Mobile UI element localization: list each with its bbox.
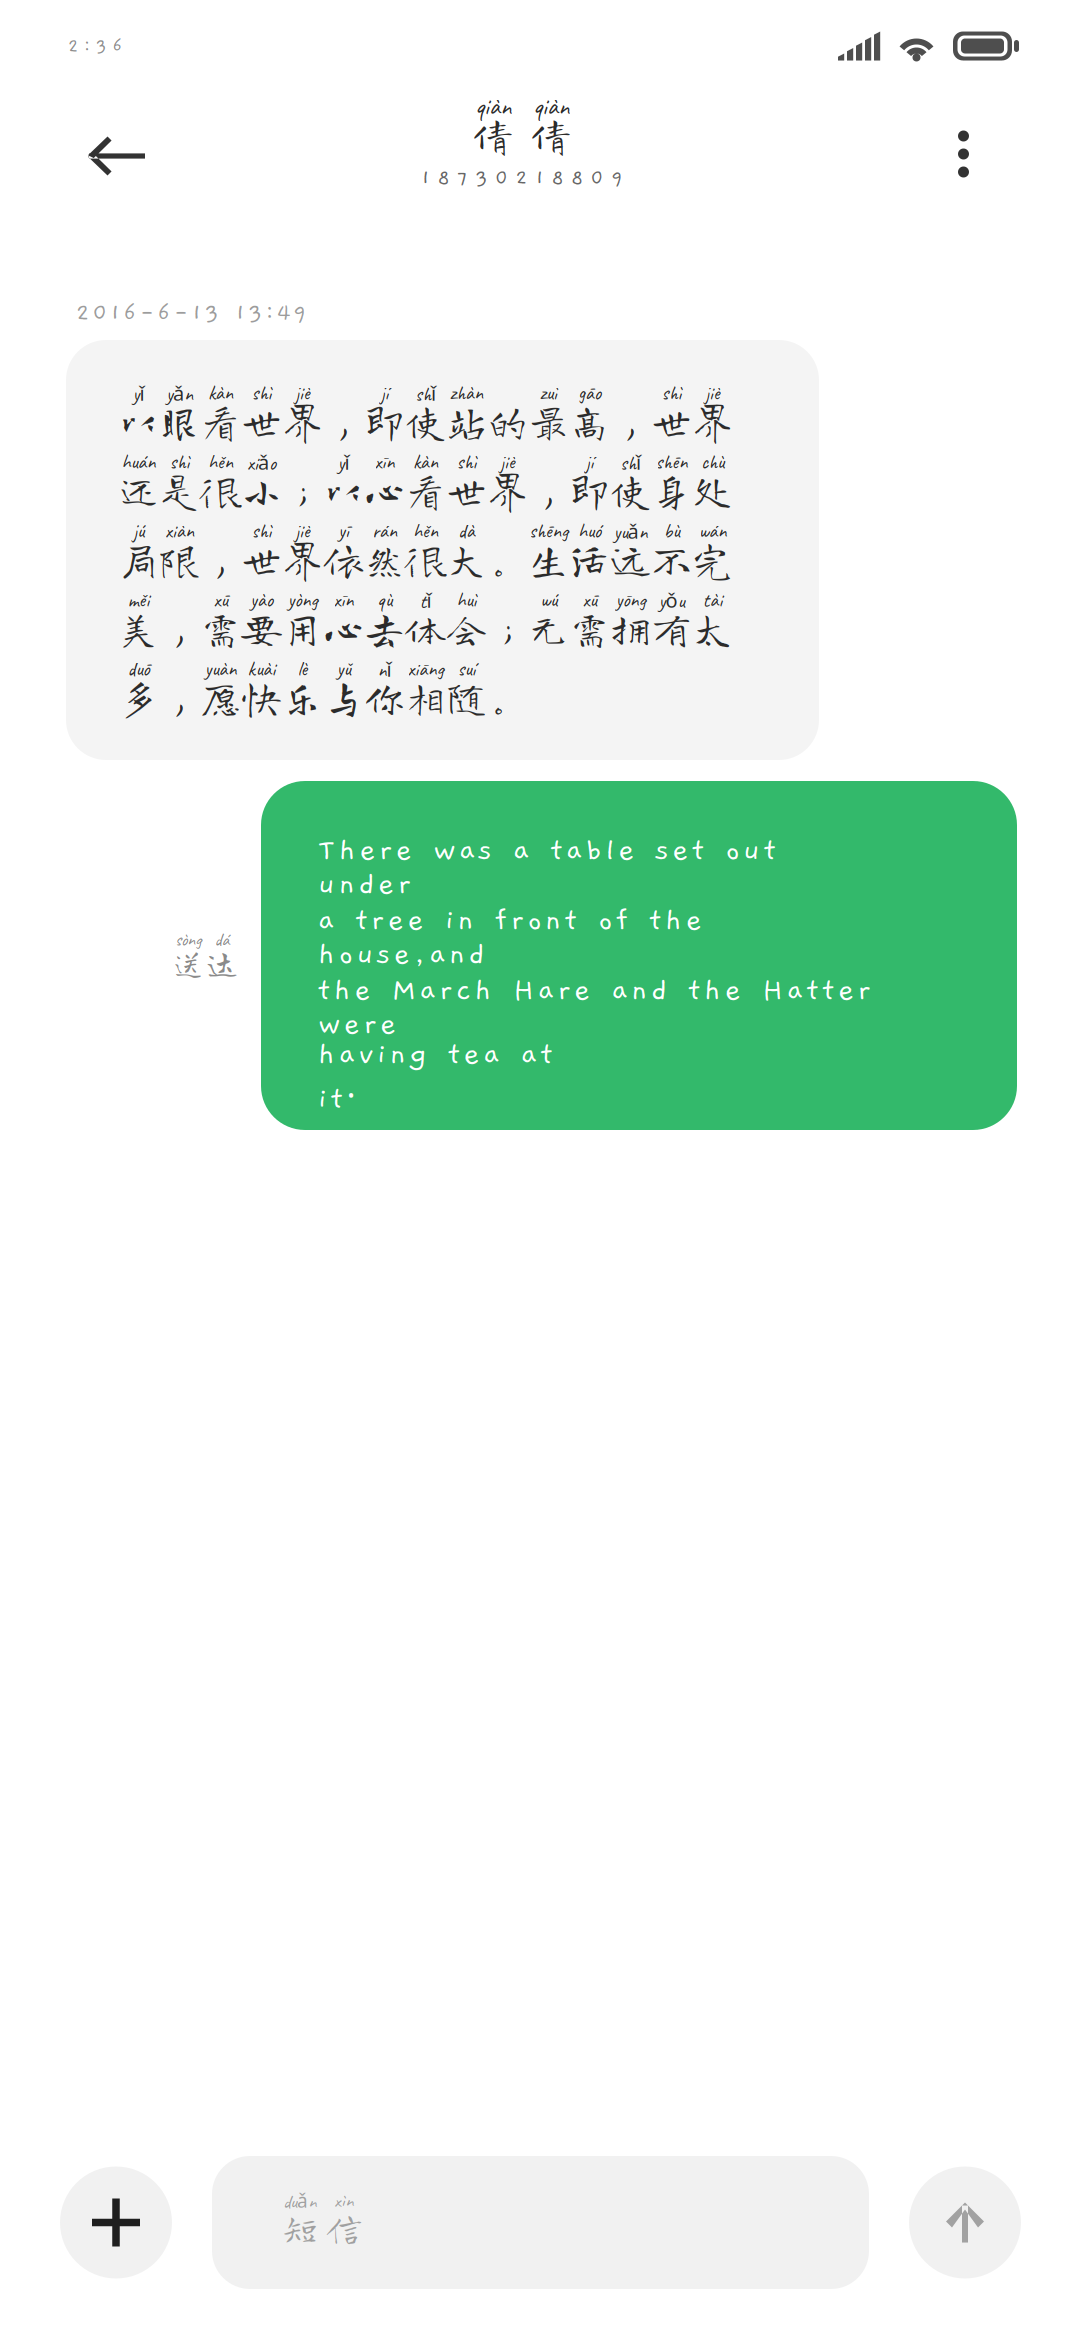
staticText: 局	[118, 538, 159, 579]
staticText: 。	[487, 538, 528, 579]
staticText: shì	[661, 380, 681, 406]
staticText: 2:36	[68, 36, 122, 56]
staticText: ，	[159, 676, 200, 717]
staticText: 世	[651, 400, 692, 441]
staticText: měi	[127, 587, 149, 613]
staticText: 即	[364, 400, 405, 441]
staticText: ，	[610, 400, 651, 441]
staticText: 界	[282, 538, 323, 579]
staticText: 18730218809	[421, 167, 623, 190]
staticText: 信	[326, 2209, 362, 2245]
staticText: 世	[241, 400, 282, 441]
staticText: yǒu	[658, 586, 684, 614]
staticText: 世	[241, 538, 282, 579]
staticText: yào	[250, 587, 273, 613]
staticText: ；	[487, 607, 528, 648]
staticText: 需	[200, 607, 241, 648]
staticText: 体	[405, 607, 446, 648]
staticText: 相	[405, 676, 446, 717]
staticText: yǔ	[336, 656, 350, 682]
button[interactable]: Add attachment	[60, 2156, 172, 2289]
staticText: 界	[692, 400, 733, 441]
staticText: a tree in front of the house,and	[318, 903, 890, 937]
staticText: 太	[692, 607, 733, 648]
button[interactable]: duǎn	[212, 2156, 869, 2289]
staticText: 看	[200, 400, 241, 441]
staticText: wú	[540, 587, 557, 613]
staticText: jí	[585, 449, 593, 475]
staticText: 生	[528, 538, 569, 579]
staticText: lè	[297, 656, 307, 682]
staticText: hěn	[413, 518, 438, 544]
staticText: ，	[323, 400, 364, 441]
staticText: 拥	[610, 607, 651, 648]
staticText: 界	[487, 469, 528, 510]
staticText: 快	[241, 676, 282, 717]
staticText: tǐ	[419, 586, 431, 614]
staticText: 倩	[472, 114, 513, 155]
staticText: qiàn	[533, 91, 569, 122]
staticText: xiǎo	[247, 448, 276, 476]
staticText: qù	[377, 587, 392, 613]
staticText: 处	[692, 469, 733, 510]
staticText: wán	[698, 518, 726, 544]
staticText: yǐ	[132, 379, 144, 407]
staticText: shì	[456, 449, 476, 475]
staticText: 心	[323, 607, 364, 648]
button[interactable]: Back	[88, 92, 145, 202]
staticText: duō	[127, 656, 149, 682]
staticText: tài	[702, 587, 722, 613]
staticText: 很	[405, 538, 446, 579]
staticText: 是	[159, 469, 200, 510]
staticText: nǐ	[377, 655, 391, 683]
staticText: 远	[610, 538, 651, 579]
button[interactable]: Send	[909, 2156, 1021, 2289]
staticText: xū	[582, 587, 596, 613]
staticText: xū	[213, 587, 227, 613]
staticText: 使	[405, 400, 446, 441]
staticText: shì	[251, 380, 271, 406]
staticText: yuàn	[204, 656, 236, 682]
staticText: ；	[282, 469, 323, 510]
staticText: huó	[578, 518, 601, 544]
staticText: jiè	[705, 380, 720, 406]
staticText: xiàn	[165, 518, 194, 544]
staticText: 不	[651, 538, 692, 579]
staticText: having tea at it·	[318, 1037, 611, 1084]
staticText: 去	[364, 607, 405, 648]
staticText: shēng	[529, 518, 568, 544]
staticText: 以	[323, 469, 364, 510]
staticText: 身	[651, 469, 692, 510]
staticText: 送	[172, 946, 204, 978]
staticText: 眼	[159, 400, 200, 441]
staticText: shì	[251, 518, 271, 544]
staticText: jiè	[295, 518, 310, 544]
staticText: 有	[651, 607, 692, 648]
staticText: huán	[121, 449, 155, 475]
staticText: yòng	[287, 587, 317, 613]
staticText: 愿	[200, 676, 241, 717]
staticText: rán	[372, 518, 397, 544]
staticText: sòng	[175, 928, 201, 951]
staticText: 很	[200, 469, 241, 510]
staticText: 还	[118, 469, 159, 510]
button[interactable]: More options	[958, 92, 969, 202]
staticText: yī	[338, 518, 349, 544]
staticText: 多	[118, 676, 159, 717]
staticText: 要	[241, 607, 282, 648]
staticText: 小	[241, 469, 282, 510]
staticText: 乐	[282, 676, 323, 717]
staticText: shǐ	[620, 448, 641, 476]
staticText: 心	[364, 469, 405, 510]
staticText: 达	[206, 946, 238, 978]
staticText: ，	[200, 538, 241, 579]
staticText: 限	[159, 538, 200, 579]
staticText: 然	[364, 538, 405, 579]
staticText: jiè	[295, 380, 310, 406]
staticText: gāo	[578, 380, 601, 406]
staticText: 。	[487, 676, 528, 717]
staticText: 与	[323, 676, 364, 717]
staticText: 活	[569, 538, 610, 579]
staticText: 的	[487, 400, 528, 441]
staticText: 依	[323, 538, 364, 579]
